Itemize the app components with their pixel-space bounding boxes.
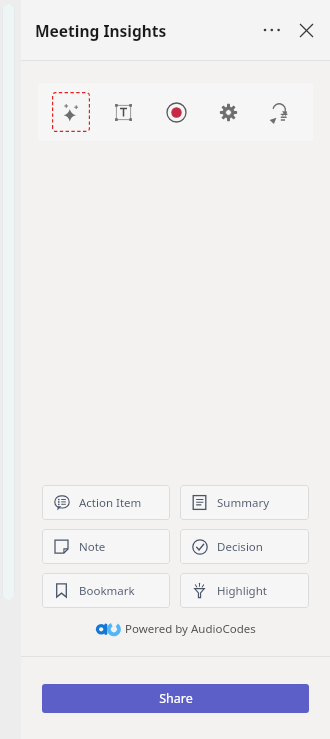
staticText: Action Item [79,495,142,511]
staticText: Share [159,690,193,707]
button[interactable]: AI suggestions [52,92,90,132]
button[interactable]: Settings [209,92,247,132]
button[interactable]: Summary [180,485,309,520]
button[interactable]: Highlight [180,573,309,608]
staticText: Note [79,539,106,555]
staticText: Powered by AudioCodes [125,621,256,637]
staticText: Bookmark [79,583,135,599]
button[interactable]: Action Item [42,485,170,520]
staticText: Highlight [217,583,267,599]
button[interactable]: Record [157,92,195,132]
staticText: Meeting Insights [35,20,167,41]
button[interactable]: Share [42,684,309,713]
button[interactable]: Text [104,92,142,132]
button[interactable]: Refresh transcript [261,92,299,132]
staticText: Summary [217,495,269,511]
button[interactable]: Bookmark [42,573,170,608]
button[interactable]: Close [290,14,322,46]
button[interactable]: Note [42,529,170,564]
staticText: Decision [217,539,263,555]
button[interactable]: More options [257,15,287,45]
button[interactable]: Decision [180,529,309,564]
